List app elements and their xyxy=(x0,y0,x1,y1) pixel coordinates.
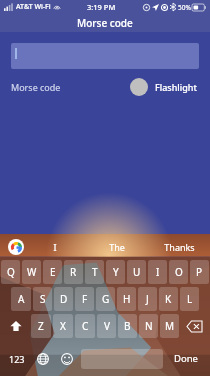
button[interactable]: B xyxy=(118,314,137,338)
staticText: B xyxy=(124,319,131,333)
staticText: P xyxy=(196,265,203,279)
button[interactable]: P xyxy=(190,260,209,284)
button[interactable]: Shift xyxy=(1,314,31,338)
staticText: T xyxy=(92,265,98,279)
button[interactable]: Space xyxy=(81,349,163,369)
staticText: 123 xyxy=(9,353,25,365)
staticText: M xyxy=(165,319,175,333)
staticText: R xyxy=(70,265,77,279)
staticText: A xyxy=(18,292,25,306)
staticText: Done xyxy=(174,352,198,365)
button[interactable]: I xyxy=(24,234,86,260)
staticText: X xyxy=(60,319,66,333)
button[interactable]: F xyxy=(75,287,94,311)
button[interactable]: Y xyxy=(106,260,125,284)
staticText: F xyxy=(82,292,88,306)
staticText: Morse code xyxy=(77,16,133,30)
button[interactable]: N xyxy=(139,314,158,338)
staticText: N xyxy=(145,319,153,333)
button[interactable]: Done xyxy=(165,341,207,376)
staticText: G xyxy=(102,292,110,306)
button[interactable]: E xyxy=(43,260,62,284)
staticText: J xyxy=(146,292,149,306)
staticText: D xyxy=(60,292,68,306)
staticText: E xyxy=(50,265,56,279)
button[interactable]: A xyxy=(11,287,31,311)
button[interactable]: Backspace xyxy=(179,314,209,338)
button[interactable]: I xyxy=(148,260,167,284)
staticText: Y xyxy=(113,265,119,279)
button[interactable]: R xyxy=(64,260,83,284)
button[interactable]: Morse code xyxy=(11,81,61,93)
staticText: S xyxy=(40,292,46,306)
staticText: K xyxy=(165,292,172,306)
button[interactable]: The xyxy=(86,234,148,260)
button[interactable]: Emoji xyxy=(55,341,79,376)
button[interactable]: D xyxy=(54,287,73,311)
button[interactable]: V xyxy=(97,314,116,338)
button[interactable] xyxy=(11,43,199,69)
staticText: C xyxy=(82,319,89,333)
button[interactable]: Google xyxy=(8,239,24,255)
staticText: V xyxy=(104,319,110,333)
button[interactable]: Z xyxy=(31,314,51,338)
staticText: Q xyxy=(7,265,15,279)
button[interactable]: 123 xyxy=(3,341,31,376)
button[interactable]: W xyxy=(22,260,41,284)
staticText: U xyxy=(133,265,141,279)
button[interactable]: C xyxy=(75,314,95,338)
button[interactable]: K xyxy=(159,287,178,311)
button[interactable]: X xyxy=(53,314,73,338)
staticText: W xyxy=(27,265,37,279)
button[interactable]: Flashlight xyxy=(155,81,197,93)
staticText: O xyxy=(175,265,183,279)
staticText: 3:19 PM xyxy=(87,2,116,12)
staticText: I xyxy=(156,265,160,279)
button[interactable]: H xyxy=(117,287,136,311)
button[interactable]: J xyxy=(138,287,157,311)
staticText: Z xyxy=(38,319,44,333)
staticText: 50% xyxy=(178,3,191,12)
button[interactable]: S xyxy=(33,287,52,311)
staticText: The xyxy=(109,241,125,253)
button[interactable]: Flashlight toggle xyxy=(130,78,148,96)
staticText: Thanks xyxy=(164,241,195,253)
button[interactable]: M xyxy=(160,314,179,338)
button[interactable]: T xyxy=(85,260,104,284)
button[interactable]: U xyxy=(127,260,146,284)
staticText: AT&T Wi-Fi xyxy=(16,2,51,12)
button[interactable]: Thanks xyxy=(148,234,210,260)
button[interactable]: G xyxy=(96,287,115,311)
button[interactable]: Change language xyxy=(31,341,55,376)
staticText: I xyxy=(53,241,57,253)
button[interactable]: L xyxy=(180,287,199,311)
button[interactable]: O xyxy=(169,260,188,284)
staticText: L xyxy=(187,292,193,306)
button[interactable]: Q xyxy=(1,260,20,284)
staticText: H xyxy=(123,292,131,306)
